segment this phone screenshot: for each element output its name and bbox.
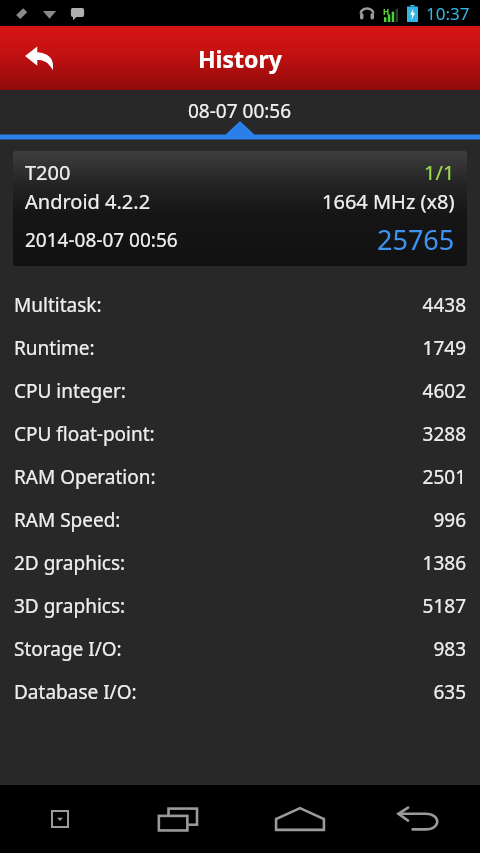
staticText: H xyxy=(383,6,390,17)
staticText: 635 xyxy=(433,679,466,705)
staticText: RAM Operation: xyxy=(14,464,422,490)
staticText: 5187 xyxy=(422,593,466,619)
button[interactable]: 2D graphics: xyxy=(0,541,480,584)
staticText: 3D graphics: xyxy=(14,593,422,619)
staticText: Storage I/O: xyxy=(14,636,433,662)
button[interactable]: 3D graphics: xyxy=(0,584,480,627)
staticText: 4438 xyxy=(422,292,466,318)
button[interactable]: RAM Speed: xyxy=(0,498,480,541)
staticText: 3288 xyxy=(422,421,466,447)
staticText: 1749 xyxy=(422,335,466,361)
staticText: T200 xyxy=(25,159,424,186)
staticText: History xyxy=(198,43,282,74)
staticText: Android 4.2.2 xyxy=(25,188,322,215)
staticText: 2014-08-07 00:56 xyxy=(25,227,377,253)
staticText: 2501 xyxy=(422,464,466,490)
button[interactable]: Home xyxy=(240,785,360,853)
button[interactable]: Back xyxy=(360,785,480,853)
button[interactable]: Menu xyxy=(0,785,120,853)
button[interactable]: Runtime: xyxy=(0,326,480,369)
staticText: 2D graphics: xyxy=(14,550,422,576)
staticText: Runtime: xyxy=(14,335,422,361)
staticText: CPU integer: xyxy=(14,378,422,404)
staticText: 996 xyxy=(433,507,466,533)
button[interactable]: CPU integer: xyxy=(0,369,480,412)
button[interactable]: Storage I/O: xyxy=(0,627,480,670)
button[interactable]: Recent apps xyxy=(120,785,240,853)
button[interactable]: Back xyxy=(0,26,80,90)
staticText: 1386 xyxy=(422,550,466,576)
button[interactable]: Database I/O: xyxy=(0,670,480,713)
staticText: 4602 xyxy=(422,378,466,404)
button[interactable]: Multitask: xyxy=(0,283,480,326)
staticText: 1664 MHz (x8) xyxy=(322,188,455,215)
staticText: 08-07 00:56 xyxy=(188,98,292,124)
staticText: CPU float-point: xyxy=(14,421,422,447)
button[interactable]: T200 xyxy=(13,151,467,266)
staticText: RAM Speed: xyxy=(14,507,433,533)
staticText: Database I/O: xyxy=(14,679,433,705)
button[interactable]: CPU float-point: xyxy=(0,412,480,455)
staticText: 1/1 xyxy=(424,159,455,186)
button[interactable]: RAM Operation: xyxy=(0,455,480,498)
staticText: 10:37 xyxy=(426,2,470,25)
staticText: 25765 xyxy=(377,221,455,258)
staticText: Multitask: xyxy=(14,292,422,318)
staticText: 983 xyxy=(433,636,466,662)
